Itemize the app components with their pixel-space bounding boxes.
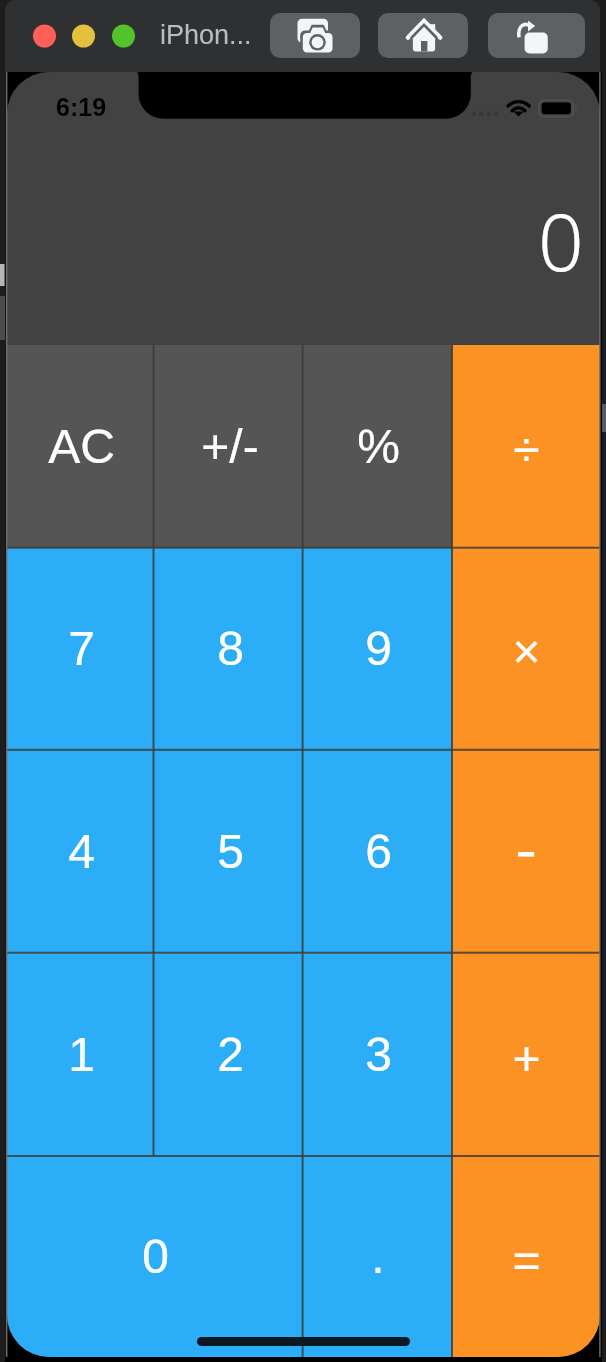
staticText: 7 xyxy=(68,622,95,676)
staticText: +/- xyxy=(201,420,259,474)
staticText: × xyxy=(512,625,541,679)
staticText: iPhon... xyxy=(160,20,252,50)
staticText: % xyxy=(357,420,400,474)
staticText: AC xyxy=(48,420,115,474)
button[interactable]: Home xyxy=(378,13,468,58)
button[interactable]: % xyxy=(304,345,452,548)
button[interactable]: 6 xyxy=(304,750,452,953)
staticText: 2 xyxy=(217,1028,244,1082)
staticText: 8 xyxy=(217,622,244,676)
staticText: ÷ xyxy=(513,423,540,477)
button[interactable]: + xyxy=(452,953,600,1156)
button[interactable]: . xyxy=(304,1156,452,1357)
staticText: 1 xyxy=(68,1028,95,1082)
button[interactable]: 7 xyxy=(7,548,156,750)
button[interactable]: 8 xyxy=(156,548,304,750)
button[interactable]: 0 xyxy=(7,1156,304,1357)
staticText: . xyxy=(371,1230,385,1284)
staticText: 0 xyxy=(142,1230,169,1284)
button[interactable]: × xyxy=(452,548,600,750)
staticText: 6 xyxy=(365,825,392,879)
button[interactable]: Screenshot xyxy=(270,13,360,58)
staticText: 6:19 xyxy=(56,93,107,121)
button[interactable] xyxy=(452,750,600,953)
button[interactable]: 5 xyxy=(156,750,304,953)
button[interactable]: 2 xyxy=(156,953,304,1156)
button[interactable]: 3 xyxy=(304,953,452,1156)
button[interactable]: 9 xyxy=(304,548,452,750)
button[interactable]: Rotate xyxy=(488,13,585,58)
staticText: 0 xyxy=(538,185,584,294)
staticText: 5 xyxy=(217,825,244,879)
staticText: 3 xyxy=(365,1028,392,1082)
staticText: 9 xyxy=(365,622,392,676)
button[interactable]: 4 xyxy=(7,750,156,953)
staticText: = xyxy=(512,1234,541,1288)
staticText: 4 xyxy=(68,825,95,879)
button[interactable]: ÷ xyxy=(452,345,600,548)
button[interactable]: AC xyxy=(7,345,156,548)
button[interactable]: = xyxy=(452,1156,600,1357)
button[interactable]: +/- xyxy=(156,345,304,548)
staticText: + xyxy=(512,1032,541,1086)
button[interactable]: 1 xyxy=(7,953,156,1156)
